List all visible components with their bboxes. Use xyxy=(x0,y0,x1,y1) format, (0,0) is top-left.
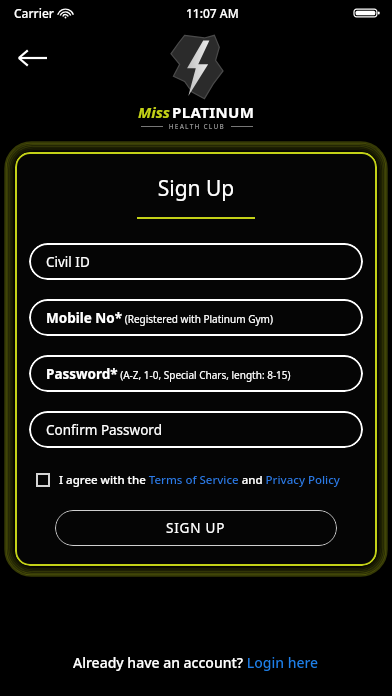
staticText: Carrier xyxy=(14,5,54,21)
staticText: Confirm Password xyxy=(46,421,162,439)
staticText: Sign Up xyxy=(29,174,363,203)
staticText: Miss xyxy=(138,102,170,122)
staticText: HEALTH CLUB xyxy=(163,122,231,131)
button[interactable]: Already have an account? Login here xyxy=(73,653,319,672)
button[interactable]: Confirm Password xyxy=(29,411,363,448)
button[interactable]: Password* (A-Z, 1-0, Special Chars, leng… xyxy=(29,355,363,392)
staticText: PLATINUM xyxy=(172,102,255,122)
staticText: I agree with the Terms of Service and Pr… xyxy=(59,472,340,488)
button[interactable]: SIGN UP xyxy=(55,510,337,546)
staticText: Civil ID xyxy=(46,253,90,271)
button[interactable]: I agree with the Terms of Service and Pr… xyxy=(36,472,340,488)
staticText: 11:07 AM xyxy=(186,5,239,21)
staticText: Password* (A-Z, 1-0, Special Chars, leng… xyxy=(46,365,291,383)
button[interactable]: Civil ID xyxy=(29,243,363,280)
staticText: Mobile No* (Registered with Platinum Gym… xyxy=(46,309,273,327)
staticText: Already have an account? Login here xyxy=(73,653,319,672)
button[interactable]: Mobile No* (Registered with Platinum Gym… xyxy=(29,299,363,336)
staticText: SIGN UP xyxy=(166,519,226,537)
button[interactable]: Back xyxy=(10,36,54,80)
